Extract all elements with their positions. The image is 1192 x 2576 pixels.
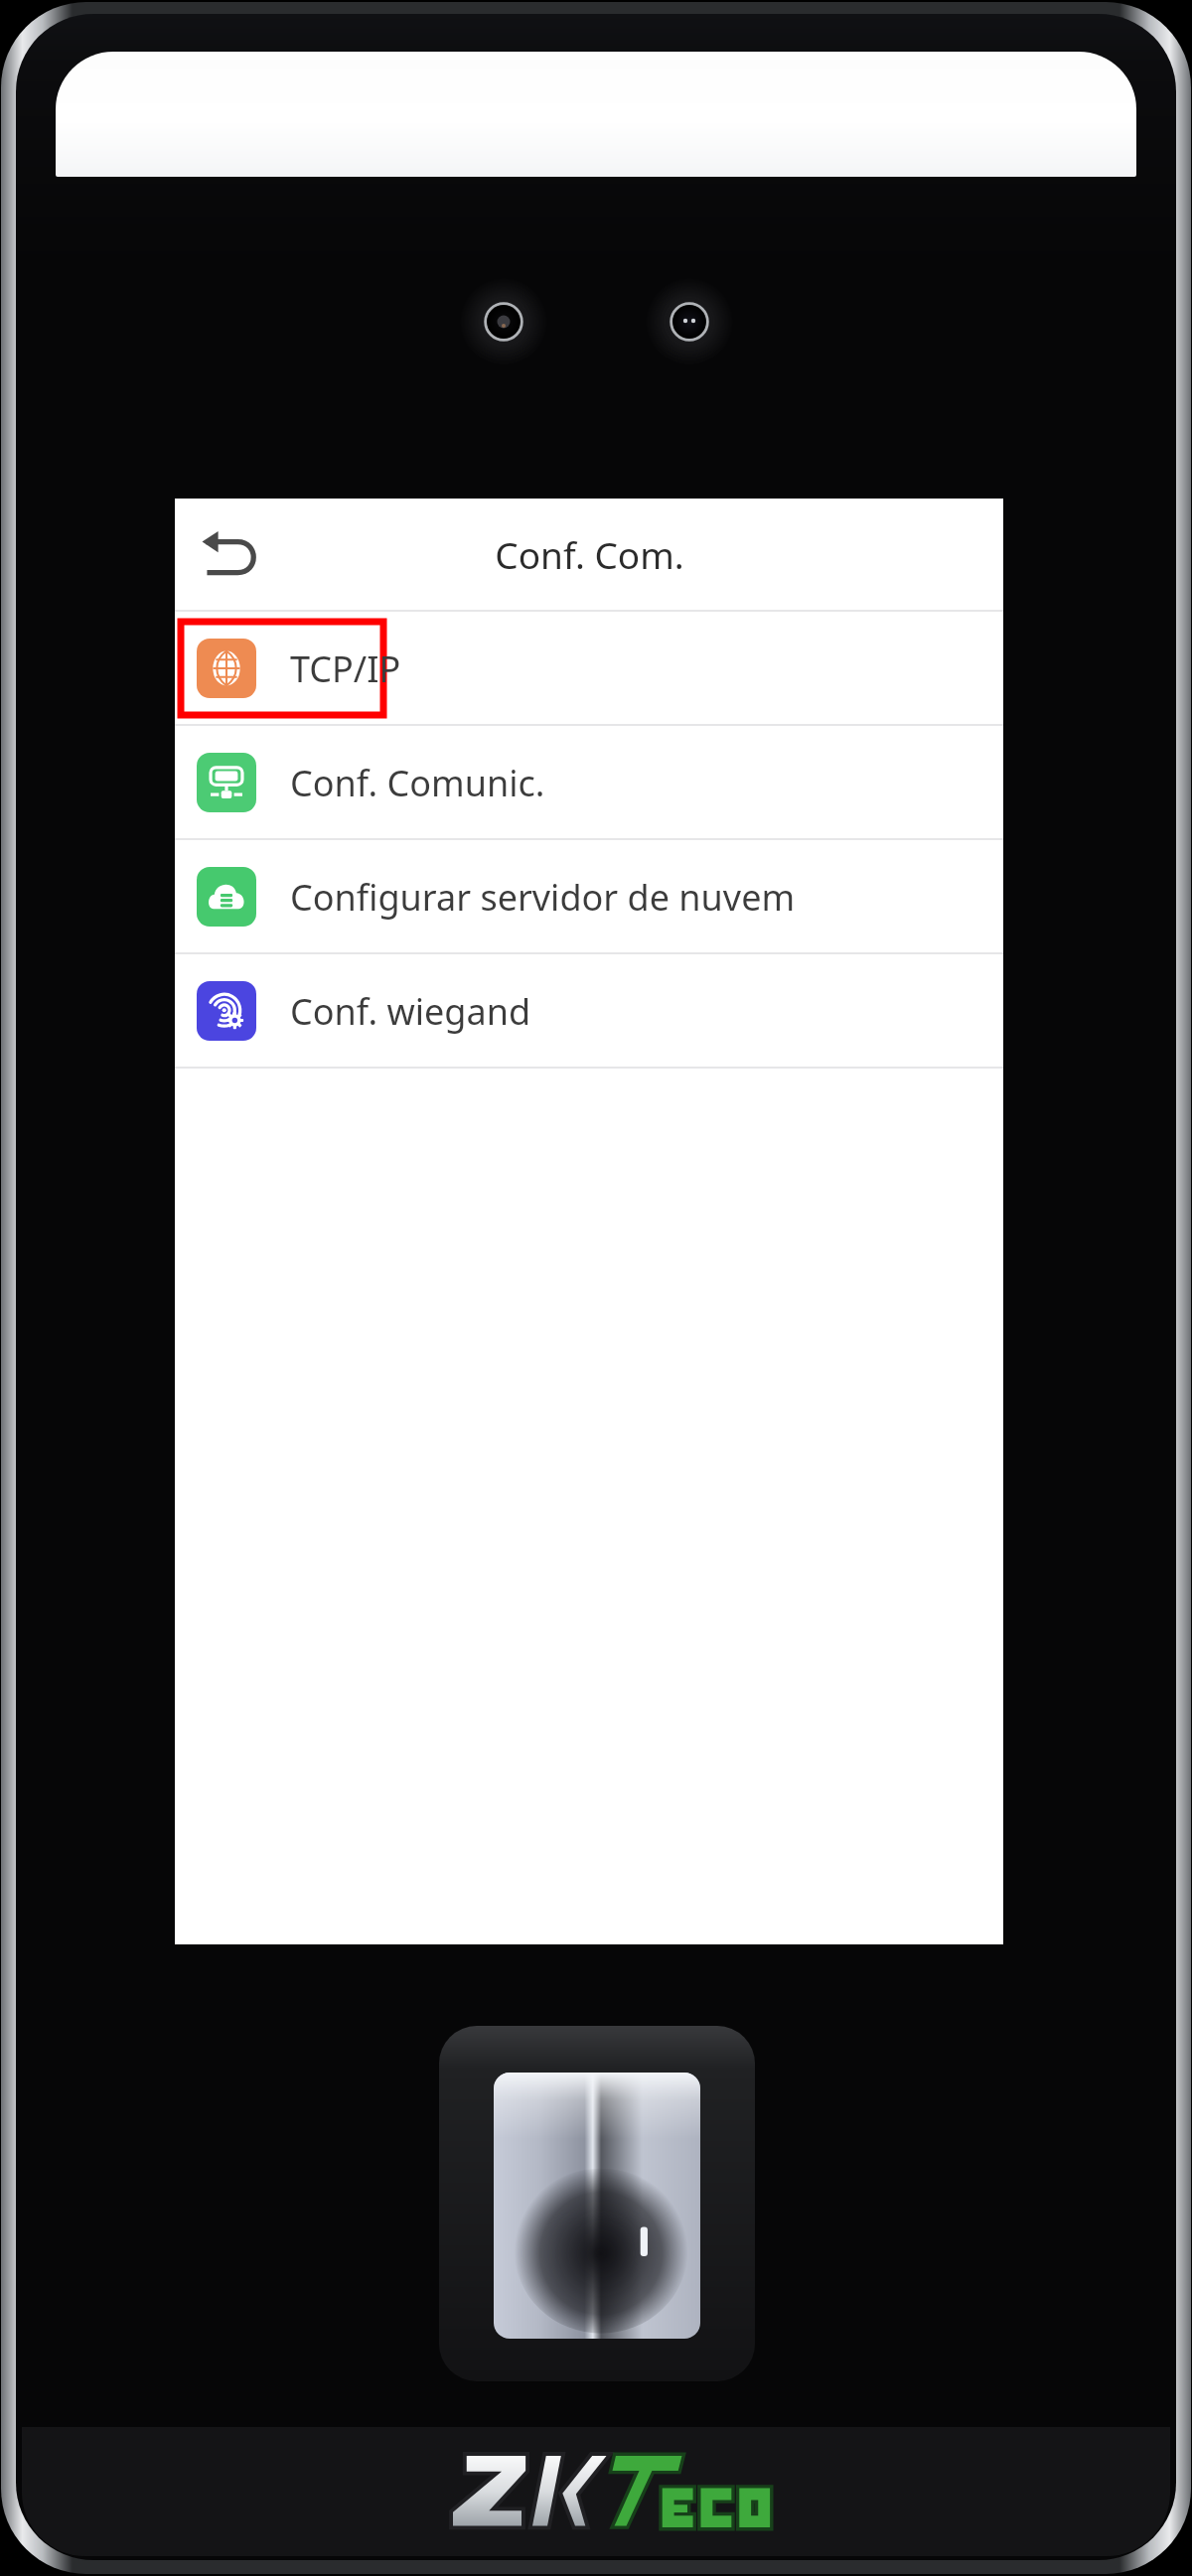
button[interactable]: Conf. Comunic. — [175, 726, 1003, 838]
staticText: Conf. wiegand — [290, 987, 531, 1036]
button[interactable]: Conf. wiegand — [175, 954, 1003, 1067]
staticText: Configurar servidor de nuvem — [290, 873, 796, 922]
staticText: TCP/IP — [290, 644, 401, 693]
button[interactable]: Back — [189, 512, 272, 596]
staticText: Conf. Com. — [495, 529, 684, 579]
button[interactable]: Configurar servidor de nuvem — [175, 840, 1003, 952]
button[interactable]: TCP/IP — [175, 612, 1003, 724]
staticText: Conf. Comunic. — [290, 759, 545, 807]
